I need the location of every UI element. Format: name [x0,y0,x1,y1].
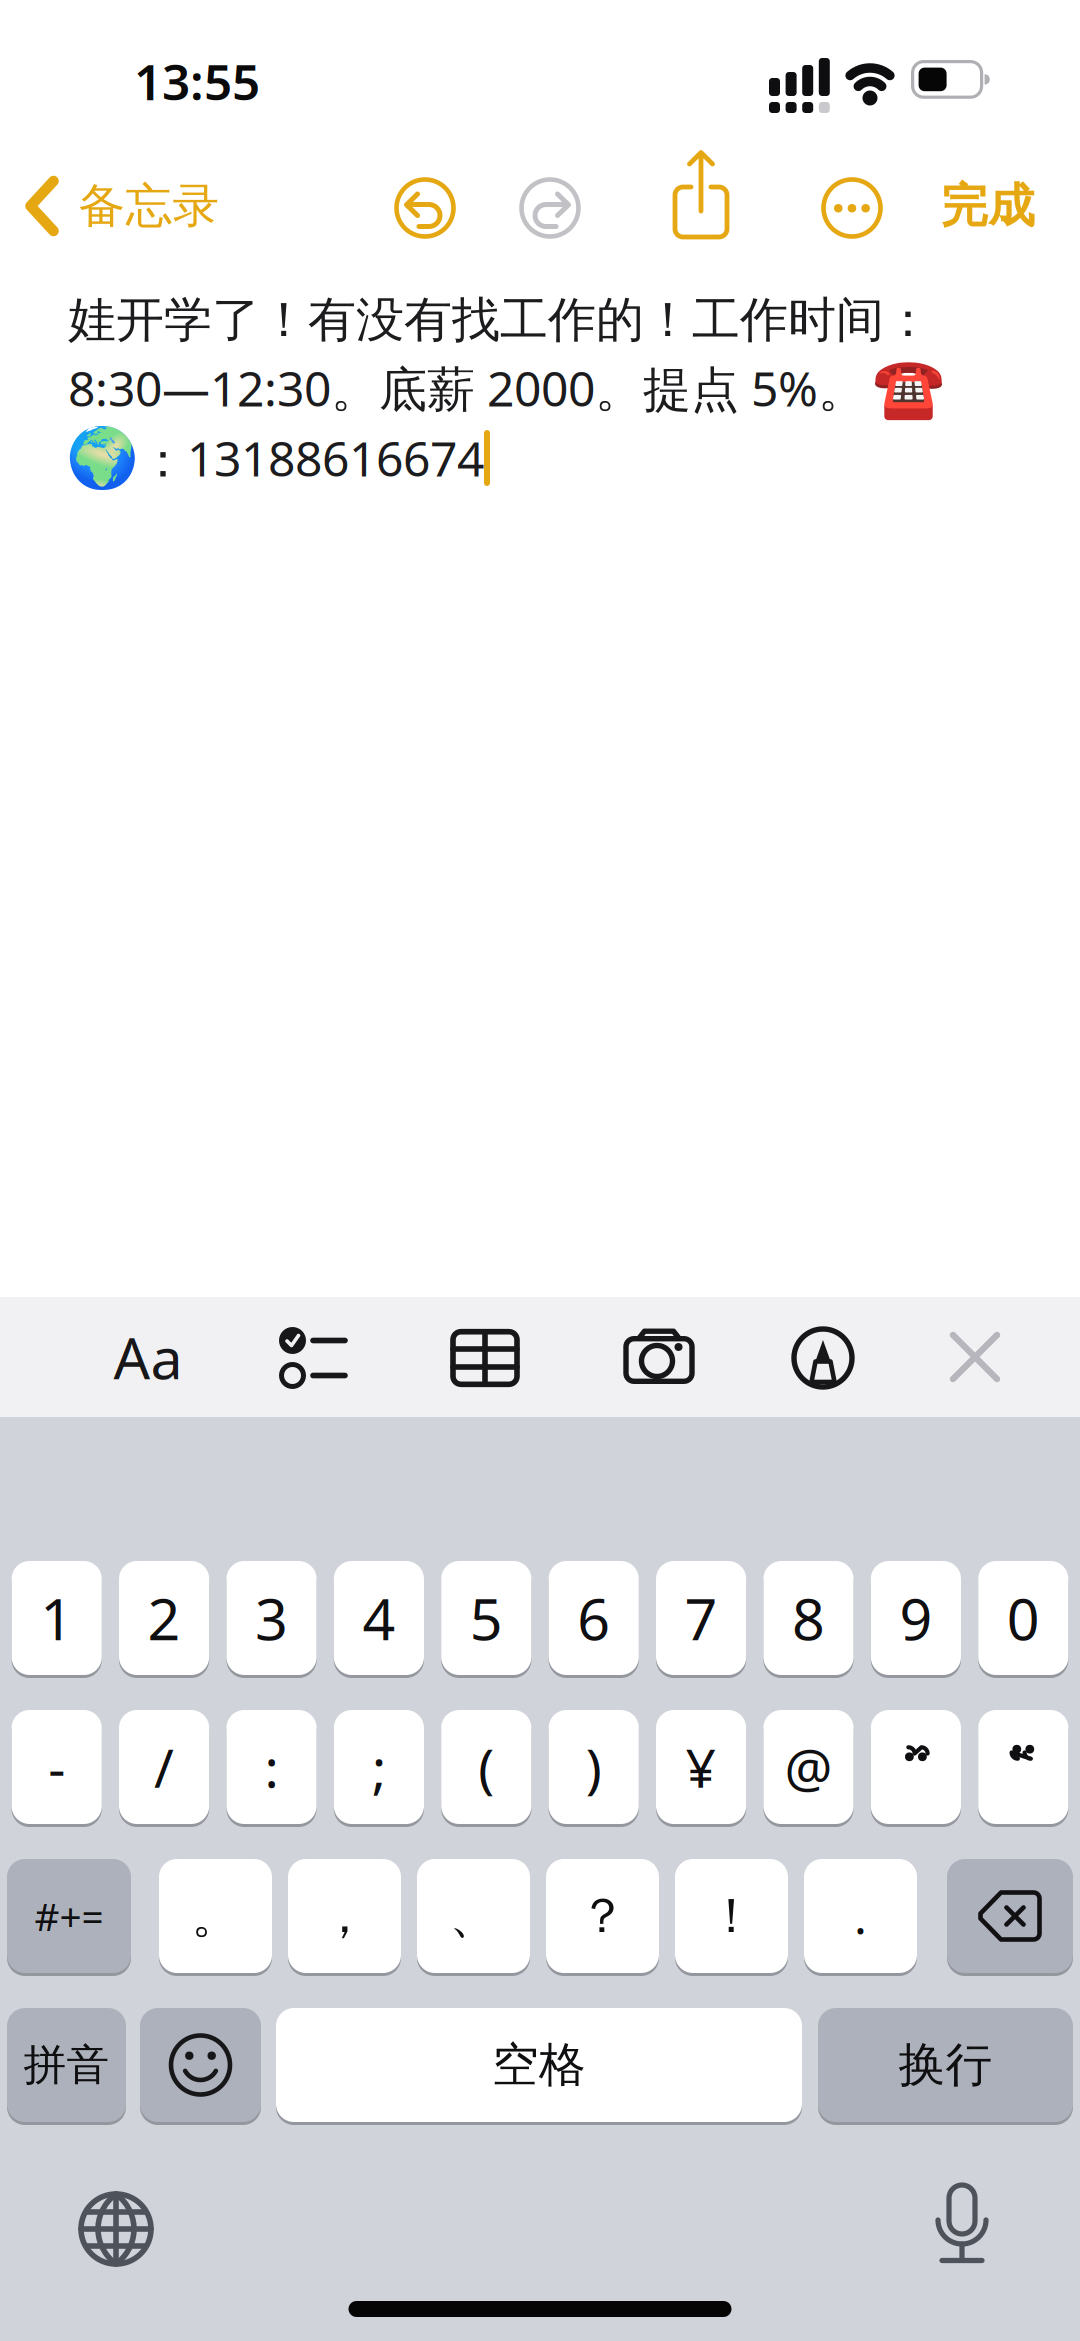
staticText: / [154,1732,174,1802]
button[interactable]: ; [334,1708,424,1825]
staticText: 8:30—12:30。底薪 2000。提点 5%。 [68,356,866,420]
button[interactable]: 8 [763,1559,854,1676]
staticText: 、 [449,1886,497,1945]
button[interactable]: 3 [226,1559,317,1676]
button[interactable]: 、 [417,1857,530,1974]
button[interactable]: 0 [978,1559,1068,1676]
button[interactable]: ( [441,1708,531,1825]
button[interactable]: Delete [947,1857,1073,1974]
staticText: 13:55 [134,48,260,114]
button[interactable]: 1 [12,1559,102,1676]
button[interactable]: 9 [871,1559,961,1676]
staticText: - [48,1732,65,1802]
button[interactable]: 备忘录 [26,176,219,236]
staticText: Aa [113,1319,182,1395]
staticText: ！ [707,1886,755,1945]
button[interactable]: 5 [441,1559,531,1676]
button[interactable]: ) [549,1708,639,1825]
button[interactable]: ？ [546,1857,659,1974]
button[interactable]: ！ [675,1857,788,1974]
staticText: ☎️ [872,354,945,421]
staticText: 2 [148,1580,181,1656]
staticText: ， [320,1886,368,1945]
button[interactable]: / [119,1708,209,1825]
button[interactable]: 空格 [276,2006,802,2123]
button[interactable]: - [12,1708,102,1825]
button[interactable]: ， [288,1857,401,1974]
button[interactable]: 7 [656,1559,746,1676]
button[interactable]: Redo [517,175,583,241]
button[interactable]: Emoji [140,2006,261,2123]
staticText: 。 [191,1886,239,1945]
button[interactable]: 换行 [818,2006,1073,2123]
staticText: 娃开学了！有没有找工作的！工作时间： [68,290,932,349]
staticText: 7 [685,1580,718,1656]
button[interactable]: Table [450,1329,520,1387]
staticText: : [264,1732,278,1802]
button[interactable]: Share [669,148,733,244]
staticText: ¥ [686,1732,717,1802]
staticText: 9 [899,1580,932,1656]
button[interactable]: 4 [334,1559,424,1676]
staticText: 拼音 [23,2039,109,2091]
staticText: 1 [40,1580,73,1656]
staticText: @ [784,1732,832,1802]
staticText: ：13188616674 [139,426,484,490]
button[interactable]: Checklist [279,1327,349,1389]
staticText: . [854,1884,867,1948]
button[interactable]: ” [978,1708,1068,1825]
button[interactable]: 。 [159,1857,272,1974]
button[interactable]: 完成 [941,177,1035,235]
button[interactable]: #+= [7,1857,131,1974]
button[interactable]: ¥ [656,1708,746,1825]
staticText: ( [478,1732,494,1802]
button[interactable]: “ [871,1708,961,1825]
button[interactable]: Markup [790,1325,856,1391]
staticText: 完成 [941,177,1035,235]
staticText: 空格 [492,2036,586,2094]
staticText: ？ [578,1886,626,1945]
button[interactable]: 拼音 [7,2006,126,2123]
button[interactable]: More [819,175,885,241]
staticText: 6 [577,1580,610,1656]
button[interactable]: Camera [622,1328,696,1386]
staticText: ; [372,1732,386,1802]
staticText: 🌍 [66,424,139,491]
button[interactable]: 2 [119,1559,209,1676]
staticText: 0 [1007,1580,1040,1656]
button[interactable]: 6 [549,1559,639,1676]
button[interactable]: @ [763,1708,854,1825]
button[interactable]: . [804,1857,917,1974]
button[interactable]: Dictate [932,2184,992,2270]
staticText: 8 [792,1580,825,1656]
staticText: #+= [34,1890,103,1942]
button[interactable]: Next keyboard [77,2190,155,2268]
button[interactable]: Undo [392,175,458,241]
staticText: 备忘录 [78,177,219,235]
staticText: 换行 [898,2036,992,2094]
button[interactable]: Format [113,1319,182,1395]
staticText: 3 [255,1580,288,1656]
staticText: ) [586,1732,602,1802]
staticText: 5 [470,1580,503,1656]
staticText: 4 [362,1580,395,1656]
button[interactable]: Close [950,1332,1000,1382]
button[interactable]: : [226,1708,317,1825]
